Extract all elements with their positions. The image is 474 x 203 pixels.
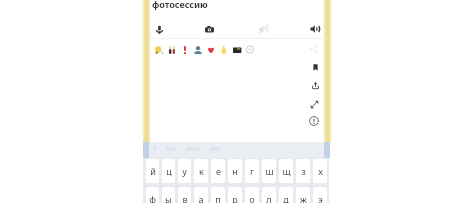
button[interactable]: з (296, 159, 310, 183)
staticText: у (182, 165, 187, 177)
staticText: в (182, 193, 188, 203)
staticText: л (266, 193, 272, 203)
staticText: п (215, 193, 221, 203)
button[interactable]: э (313, 187, 327, 203)
staticText: г (250, 165, 254, 177)
staticText: а (198, 193, 204, 203)
button[interactable]: х (313, 159, 327, 183)
button[interactable]: ф (146, 187, 159, 203)
button[interactable]: у (178, 159, 191, 183)
button[interactable]: ш (262, 159, 276, 183)
button[interactable]: Expand (306, 96, 322, 112)
button[interactable]: р (228, 187, 242, 203)
button[interactable]: Sound (307, 21, 323, 37)
button[interactable]: Voice input (151, 21, 167, 37)
button[interactable]: в (178, 187, 191, 203)
staticText: й (150, 165, 156, 177)
staticText: к (199, 165, 204, 177)
staticText: з (301, 165, 306, 177)
button[interactable]: ы (162, 187, 175, 203)
button[interactable]: н (228, 159, 242, 183)
button[interactable]: Upload (307, 77, 323, 93)
staticText: э (318, 193, 323, 203)
button[interactable]: ж (296, 187, 310, 203)
button[interactable]: emoji (165, 43, 178, 56)
button[interactable]: emoji (204, 43, 217, 56)
staticText: ф (149, 193, 156, 203)
staticText: х (318, 165, 323, 177)
button[interactable]: о (245, 187, 259, 203)
staticText: фотосессию (152, 0, 208, 10)
staticText: ш (265, 165, 274, 177)
button[interactable]: е (211, 159, 225, 183)
staticText: р (232, 193, 238, 203)
staticText: н (232, 165, 238, 177)
button[interactable]: п (211, 187, 225, 203)
button[interactable]: а (194, 187, 208, 203)
button[interactable]: д (279, 187, 293, 203)
staticText: ц (166, 165, 172, 177)
staticText: д (283, 193, 289, 203)
staticText: щ (282, 165, 291, 177)
button[interactable]: Muted (255, 21, 271, 37)
button[interactable]: л (262, 187, 276, 203)
button[interactable]: emoji (243, 43, 256, 56)
button[interactable]: emoji (152, 43, 165, 56)
button[interactable]: emoji (217, 43, 230, 56)
button[interactable]: г (245, 159, 259, 183)
staticText: ж (300, 193, 307, 203)
staticText: е (216, 165, 221, 177)
button[interactable]: emoji (191, 43, 204, 56)
button[interactable]: Camera (201, 21, 217, 37)
button[interactable]: щ (279, 159, 293, 183)
button[interactable]: Bookmark (307, 59, 323, 75)
button[interactable]: к (194, 159, 208, 183)
button[interactable]: ц (162, 159, 175, 183)
button[interactable]: й (146, 159, 159, 183)
button[interactable]: emoji (178, 43, 191, 56)
button[interactable]: Info (306, 113, 322, 129)
staticText: о (249, 193, 255, 203)
button[interactable]: Share (307, 42, 321, 56)
button[interactable]: emoji (230, 43, 243, 56)
staticText: ы (165, 193, 172, 203)
